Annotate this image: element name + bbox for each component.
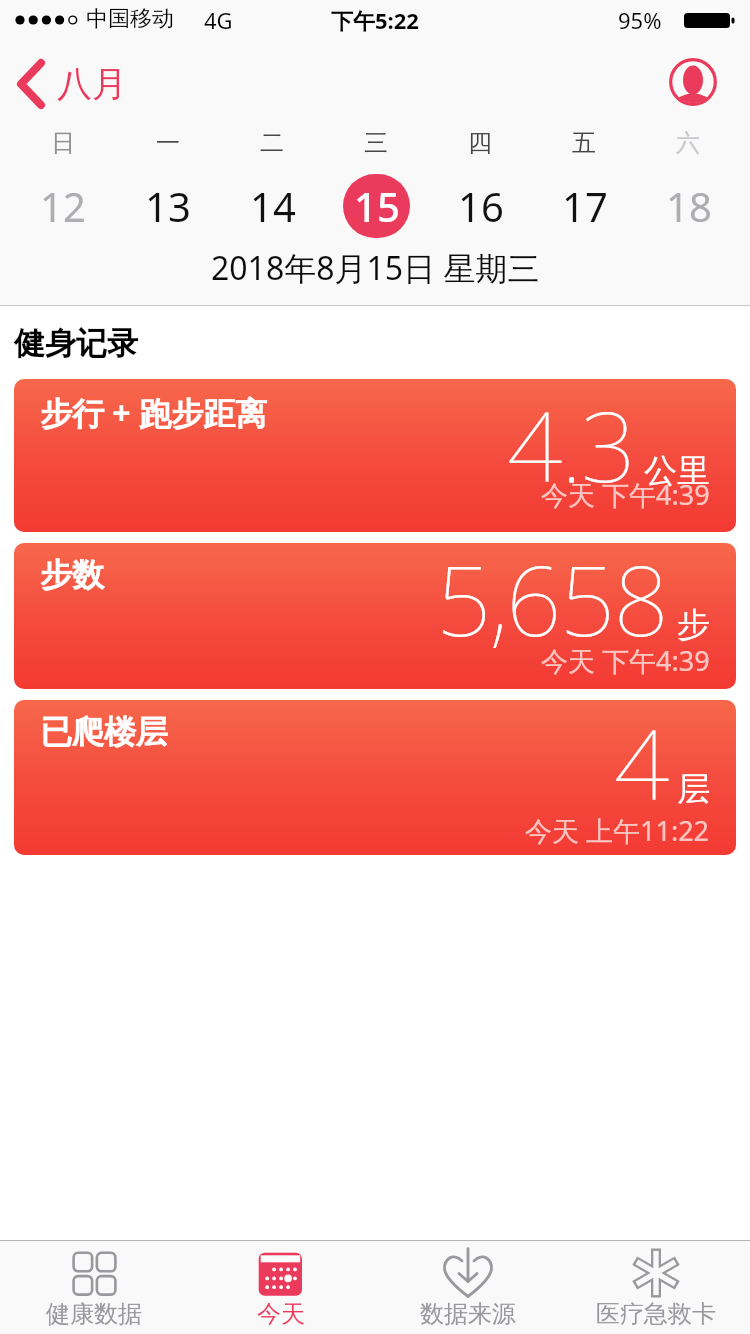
staticText: 三 bbox=[364, 128, 388, 158]
staticText: 16 bbox=[458, 179, 504, 233]
staticText: 步数 bbox=[40, 555, 104, 595]
staticText: 今天 下午4:39 bbox=[541, 476, 710, 513]
staticText: 2018年8月15日 星期三 bbox=[211, 246, 540, 290]
staticText: 公里 bbox=[644, 450, 710, 492]
staticText: 层 bbox=[677, 768, 710, 810]
staticText: 已爬楼层 bbox=[40, 712, 168, 752]
staticText: 4 bbox=[614, 700, 668, 828]
staticText: 4.3 bbox=[507, 379, 635, 510]
staticText: 5,658 bbox=[436, 543, 668, 664]
button[interactable]: 步数 bbox=[14, 543, 736, 689]
button[interactable]: 医疗急救卡 bbox=[562, 1240, 750, 1334]
staticText: 17 bbox=[562, 179, 608, 233]
button[interactable]: 14 bbox=[239, 174, 306, 238]
button[interactable]: 17 bbox=[551, 174, 618, 238]
staticText: 14 bbox=[250, 179, 296, 233]
staticText: 四 bbox=[468, 128, 492, 158]
staticText: 六 bbox=[676, 128, 700, 158]
button[interactable]: 16 bbox=[447, 174, 514, 238]
staticText: 步行 + 跑步距离 bbox=[40, 391, 267, 435]
button[interactable]: 步行 + 跑步距离 bbox=[14, 379, 736, 532]
staticText: 中国移动 bbox=[86, 5, 174, 33]
staticText: 18 bbox=[666, 179, 712, 233]
staticText: 健康数据 bbox=[46, 1299, 142, 1329]
staticText: 步 bbox=[677, 604, 710, 646]
button[interactable]: 今天 bbox=[187, 1240, 374, 1334]
staticText: 今天 下午4:39 bbox=[541, 642, 710, 679]
staticText: 95% bbox=[618, 5, 662, 35]
button[interactable]: 12 bbox=[29, 174, 96, 238]
staticText: 下午5:22 bbox=[331, 5, 419, 35]
staticText: 医疗急救卡 bbox=[596, 1299, 716, 1329]
staticText: 今天 bbox=[257, 1299, 305, 1329]
staticText: 15 bbox=[354, 179, 400, 233]
staticText: 日 bbox=[51, 128, 75, 158]
staticText: 今天 上午11:22 bbox=[525, 812, 710, 849]
button[interactable]: 15 bbox=[343, 174, 410, 238]
button[interactable]: 13 bbox=[134, 174, 201, 238]
staticText: 二 bbox=[260, 128, 284, 158]
button[interactable]: 八月 bbox=[12, 56, 127, 112]
staticText: 五 bbox=[572, 128, 596, 158]
staticText: 一 bbox=[156, 128, 180, 158]
staticText: 4G bbox=[204, 5, 233, 35]
button[interactable]: 数据来源 bbox=[374, 1240, 562, 1334]
button[interactable] bbox=[668, 57, 718, 107]
staticText: 健身记录 bbox=[14, 324, 138, 363]
staticText: 13 bbox=[145, 179, 191, 233]
staticText: 12 bbox=[40, 179, 86, 233]
button[interactable]: 健康数据 bbox=[0, 1240, 187, 1334]
staticText: 八月 bbox=[57, 62, 127, 106]
button[interactable]: 已爬楼层 bbox=[14, 700, 736, 855]
staticText: 数据来源 bbox=[420, 1299, 516, 1329]
button[interactable]: 18 bbox=[655, 174, 722, 238]
